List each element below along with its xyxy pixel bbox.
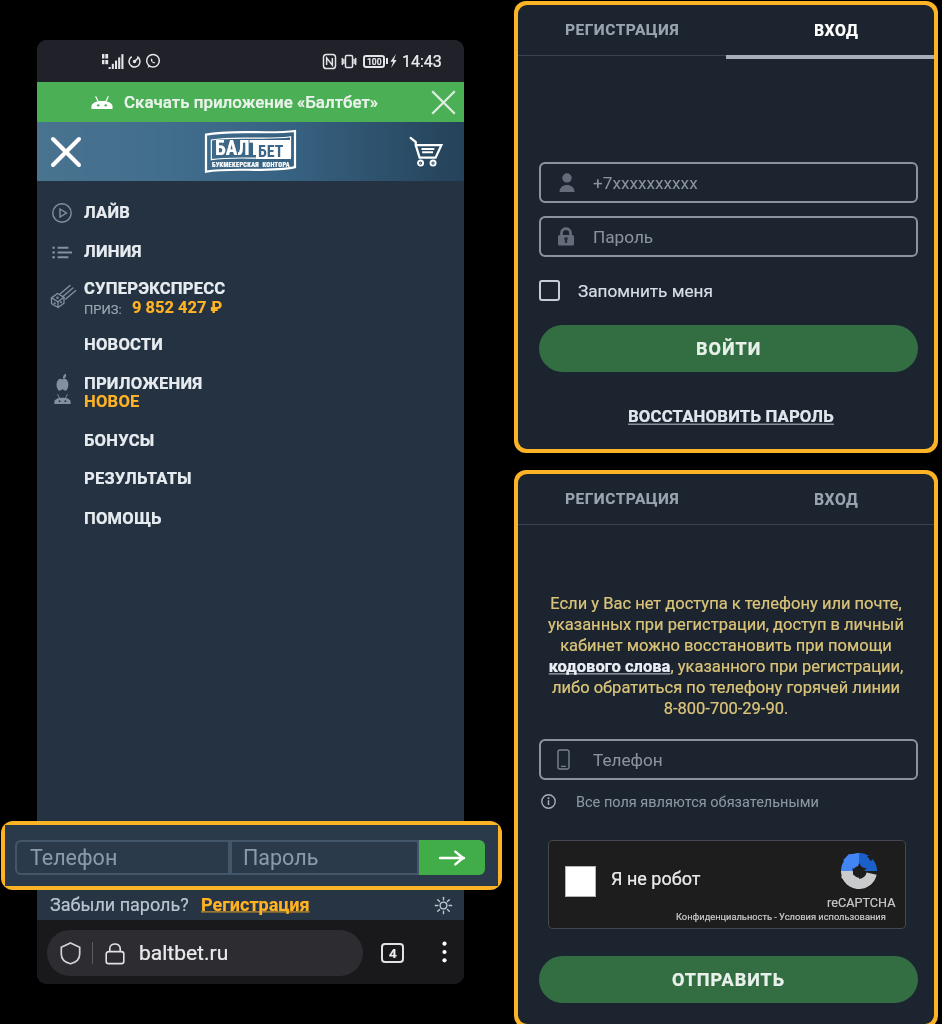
staticText: БЕТ (258, 142, 284, 161)
staticText: ЛИНИЯ (84, 242, 142, 261)
button[interactable]: СУПЕРЭКСПРЕСС (37, 274, 464, 320)
button[interactable]: baltbet.ru (47, 930, 363, 976)
button[interactable]: ВОЙТИ (539, 325, 918, 372)
button[interactable]: ПОМОЩЬ (37, 499, 464, 538)
button[interactable]: БОНУСЫ (37, 421, 464, 460)
staticText: Пароль (243, 845, 319, 870)
staticText: reCAPTCHA (827, 895, 896, 910)
button[interactable]: Пароль (539, 216, 918, 257)
button[interactable]: РЕГИСТРАЦИЯ (518, 5, 726, 55)
staticText: Я не робот (611, 868, 701, 889)
button[interactable]: РЕГИСТРАЦИЯ (518, 474, 726, 524)
staticText: +7xxxxxxxxxx (593, 173, 698, 193)
button[interactable]: Корзина (404, 122, 448, 181)
staticText: Все поля являются обязательными (576, 794, 819, 809)
button[interactable]: Запомнить меня (539, 276, 713, 305)
staticText: 9 852 427 ₽ (132, 298, 223, 317)
button[interactable]: РЕЗУЛЬТАТЫ (37, 459, 464, 498)
staticText: Пароль (593, 227, 654, 247)
staticText: БУКМЕКЕРСКАЯ КОНТОРА (212, 161, 290, 169)
staticText: Конфиденциальность - Условия использован… (676, 911, 886, 922)
staticText: Телефон (30, 845, 118, 870)
staticText: 14:43 (402, 52, 442, 71)
button[interactable]: Забыли пароль? (50, 889, 310, 920)
button[interactable]: Закрыть меню (44, 122, 88, 181)
staticText: 100 (367, 57, 382, 67)
button[interactable]: ПРИЛОЖЕНИЯ (37, 370, 464, 418)
staticText: Скачать приложение «Балтбет» (124, 92, 379, 112)
button[interactable]: Закрыть баннер (428, 82, 458, 122)
staticText: РЕЗУЛЬТАТЫ (84, 469, 192, 488)
button[interactable]: Яркость (430, 892, 456, 918)
staticText: Регистрация (201, 894, 310, 915)
staticText: ПРИЛОЖЕНИЯ (84, 374, 203, 393)
staticText: ВХОД (814, 21, 859, 40)
button[interactable]: Вкладки (381, 943, 404, 963)
staticText: БАЛТ (215, 137, 260, 160)
staticText: ПОМОЩЬ (84, 509, 162, 528)
button[interactable]: НОВОСТИ (37, 325, 464, 364)
button[interactable]: Скачать приложение «Балтбет» (91, 82, 391, 122)
staticText: НОВОЕ (84, 392, 140, 411)
button[interactable]: Войти (419, 840, 485, 875)
staticText: Забыли пароль? (50, 894, 189, 915)
staticText: ПРИЗ: (84, 302, 122, 317)
button[interactable]: ОТПРАВИТЬ (539, 956, 918, 1003)
button[interactable]: Телефон (539, 739, 918, 780)
staticText: СУПЕРЭКСПРЕСС (84, 279, 226, 298)
staticText: Запомнить меня (578, 281, 713, 301)
staticText: ВОССТАНОВИТЬ ПАРОЛЬ (628, 407, 834, 427)
staticText: ВХОД (814, 490, 859, 509)
staticText: ОТПРАВИТЬ (672, 969, 786, 990)
staticText: НОВОСТИ (84, 335, 164, 354)
staticText: БОНУСЫ (84, 431, 155, 450)
staticText: ВОЙТИ (696, 338, 762, 359)
button[interactable]: ВОССТАНОВИТЬ ПАРОЛЬ (628, 407, 834, 427)
button[interactable]: ВХОД (726, 5, 934, 55)
button[interactable]: Телефон (15, 840, 230, 875)
staticText: РЕГИСТРАЦИЯ (565, 490, 680, 508)
staticText: baltbet.ru (139, 941, 229, 966)
staticText: ЛАЙВ (84, 203, 131, 222)
staticText: Телефон (593, 750, 663, 770)
button[interactable]: ВХОД (726, 474, 934, 524)
button[interactable]: ЛАЙВ (37, 193, 464, 232)
button[interactable]: Меню браузера (432, 932, 456, 972)
staticText: Если у Вас нет доступа к телефону или по… (534, 594, 918, 718)
button[interactable]: ЛИНИЯ (37, 232, 464, 271)
button[interactable]: +7xxxxxxxxxx (539, 162, 918, 203)
button[interactable]: Я не робот (565, 866, 596, 897)
staticText: 4 (389, 945, 397, 961)
button[interactable]: Пароль (230, 840, 419, 875)
staticText: РЕГИСТРАЦИЯ (565, 21, 680, 39)
